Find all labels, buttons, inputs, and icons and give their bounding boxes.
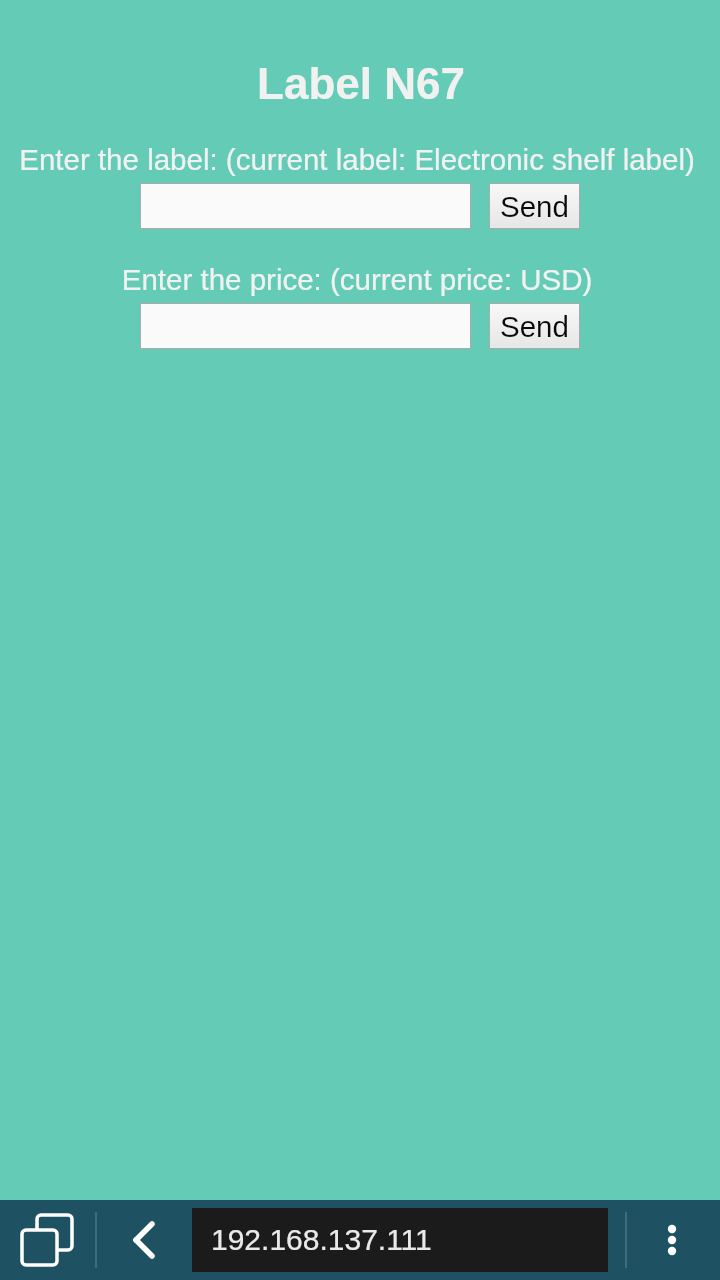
button[interactable]: Send bbox=[489, 303, 580, 349]
staticText: Send bbox=[500, 310, 569, 343]
staticText: Label N67 bbox=[1, 59, 720, 108]
button[interactable]: Text field bbox=[140, 183, 471, 229]
staticText: Enter the label: (current label: Electro… bbox=[0, 143, 717, 176]
button[interactable]: Tabs bbox=[14, 1207, 80, 1273]
button[interactable]: Text field bbox=[140, 303, 471, 349]
staticText: Send bbox=[500, 190, 569, 223]
button[interactable]: Back bbox=[112, 1208, 176, 1272]
button[interactable]: 192.168.137.111 bbox=[192, 1208, 608, 1272]
button[interactable]: More options bbox=[640, 1208, 704, 1272]
staticText: Enter the price: (current price: USD) bbox=[0, 263, 717, 296]
button[interactable]: Send bbox=[489, 183, 580, 229]
staticText: 192.168.137.111 bbox=[211, 1223, 432, 1257]
